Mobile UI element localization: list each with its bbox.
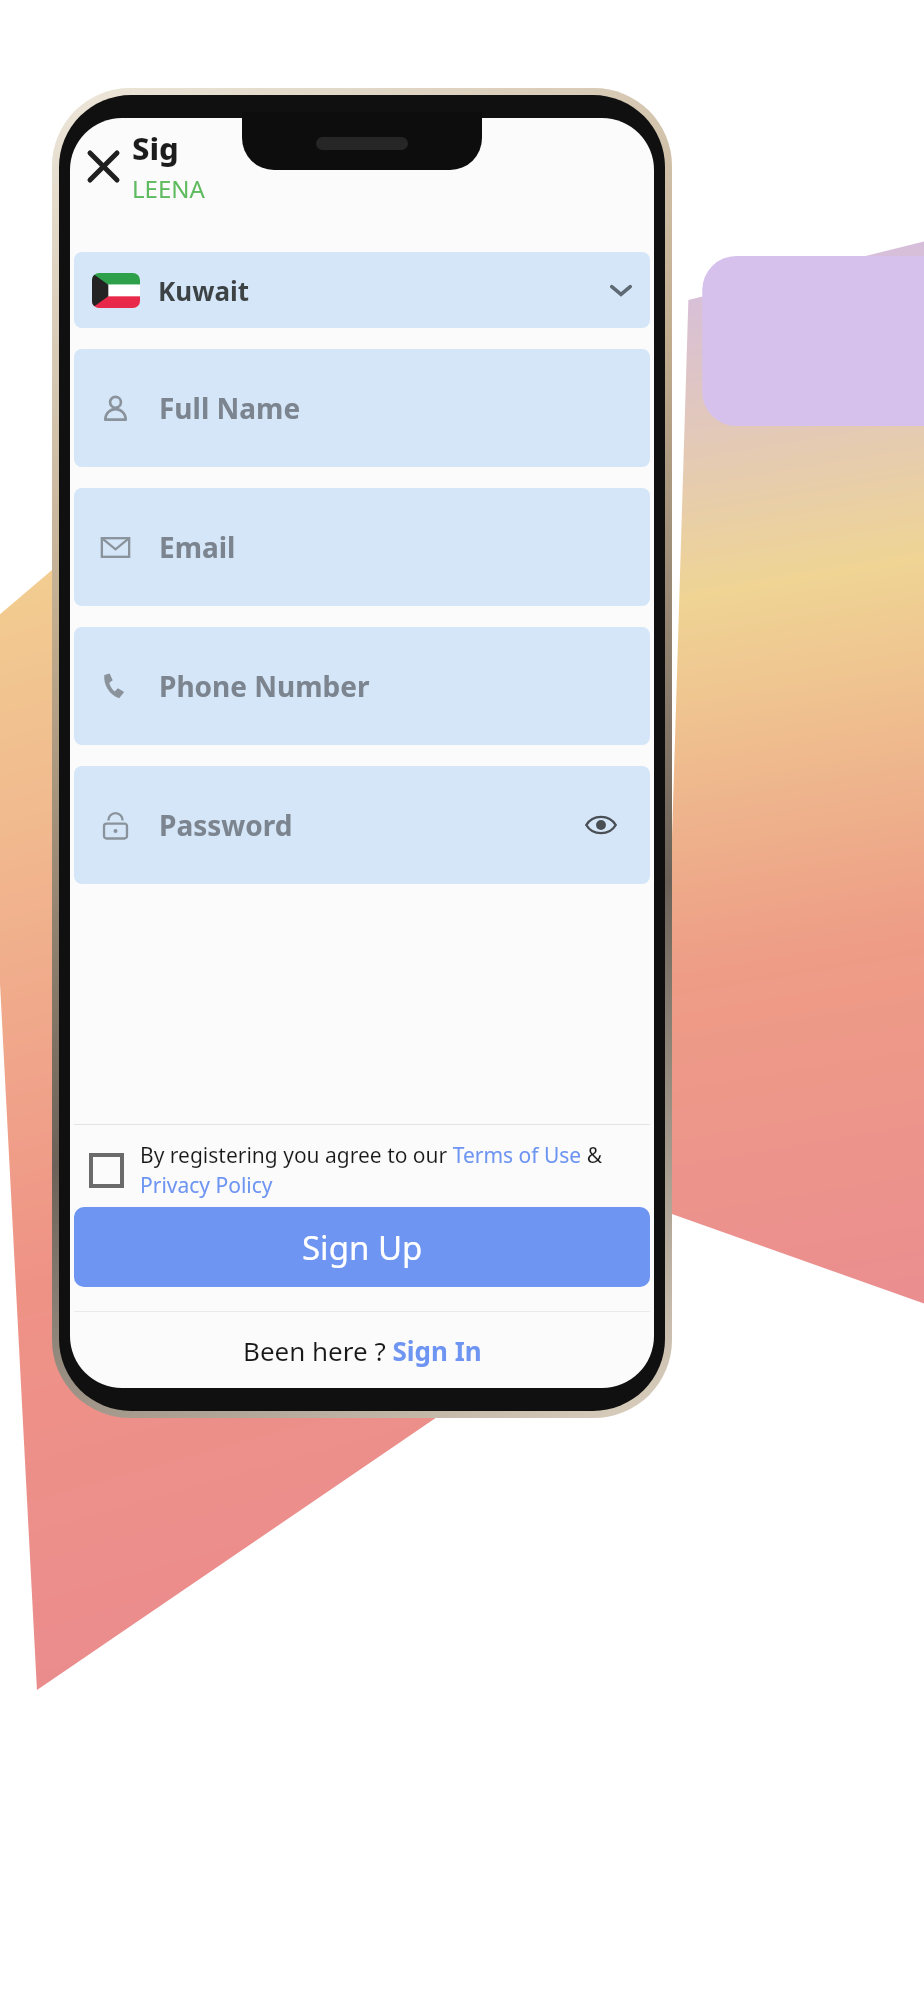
staticText: By registering you agree to our Terms of… — [140, 1141, 646, 1199]
staticText: Kuwait — [158, 273, 250, 308]
button[interactable]: Phone Number — [74, 627, 650, 745]
button[interactable]: Been here ? Sign In — [70, 1312, 654, 1388]
button[interactable]: Password — [74, 766, 650, 884]
button[interactable]: Kuwait — [74, 252, 650, 328]
staticText: Been here ? Sign In — [243, 1333, 482, 1368]
staticText: Phone Number — [159, 667, 370, 705]
button[interactable]: Close — [74, 137, 132, 195]
button[interactable]: Sign Up — [74, 1207, 650, 1287]
other: Expand — [610, 279, 632, 301]
staticText: Sign Up — [302, 1225, 423, 1270]
staticText: Full Name — [159, 389, 301, 427]
button[interactable]: Show password — [578, 802, 624, 848]
staticText: Sig — [132, 127, 179, 169]
button[interactable]: Agree to terms — [80, 1144, 132, 1196]
staticText: Email — [159, 528, 236, 566]
staticText: LEENA — [132, 172, 205, 205]
button[interactable]: Email — [74, 488, 650, 606]
staticText: Password — [159, 806, 293, 844]
button[interactable]: Full Name — [74, 349, 650, 467]
